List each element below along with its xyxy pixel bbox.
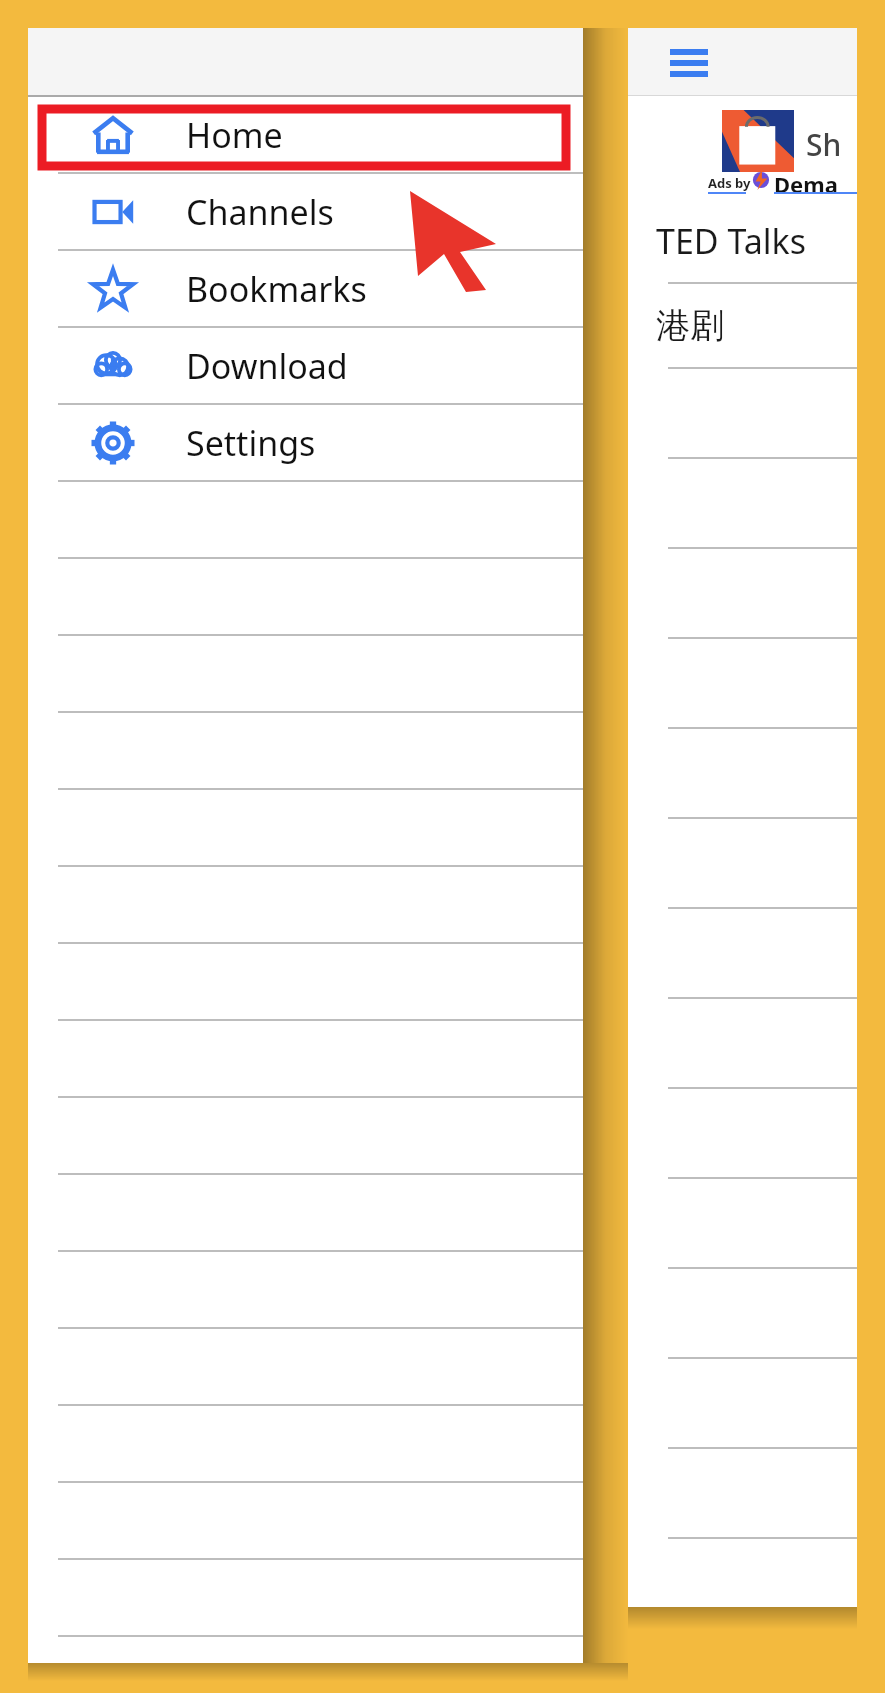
- button[interactable]: Home: [28, 97, 583, 172]
- staticText: Sh: [806, 124, 842, 165]
- staticText: Channels: [186, 189, 334, 235]
- button[interactable]: 港剧: [628, 284, 857, 367]
- staticText: TED Talks Da: [656, 218, 857, 264]
- staticText: Home: [186, 112, 283, 158]
- staticText: Ads by: [708, 174, 751, 192]
- button[interactable]: Settings: [28, 405, 583, 480]
- button[interactable]: Bookmarks: [28, 251, 583, 326]
- button[interactable]: Download: [28, 328, 583, 403]
- staticText: Settings: [186, 420, 316, 466]
- button[interactable]: Channels: [28, 174, 583, 249]
- button[interactable]: Sh: [628, 96, 857, 199]
- staticText: Bookmarks: [186, 266, 367, 312]
- staticText: Dema: [774, 169, 838, 199]
- button[interactable]: TED Talks Da: [628, 199, 857, 282]
- staticText: Download: [186, 343, 348, 389]
- staticText: 港剧: [656, 304, 724, 347]
- button[interactable]: Open navigation menu: [661, 40, 716, 84]
